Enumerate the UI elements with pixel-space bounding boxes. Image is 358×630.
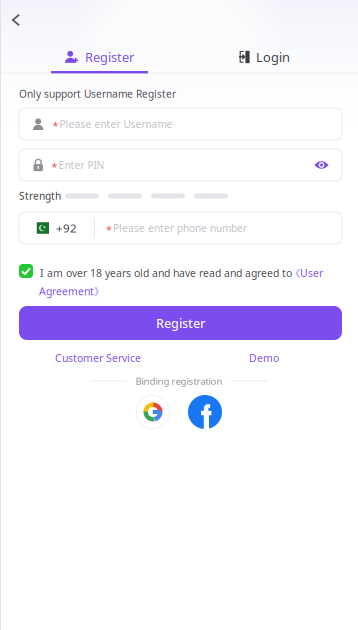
button[interactable]: Agree to terms <box>19 264 33 278</box>
staticText: Only support Username Register <box>19 87 176 101</box>
button[interactable]: Customer Service <box>18 349 178 367</box>
button[interactable]: Register <box>10 42 189 72</box>
staticText: Login <box>256 48 290 66</box>
staticText: Please enter phone number <box>113 221 247 235</box>
staticText: Enter PIN <box>58 158 104 172</box>
staticText: Demo <box>249 351 279 365</box>
button[interactable]: Show PIN <box>314 159 329 171</box>
button[interactable]: 《User <box>290 266 358 298</box>
staticText: Agreement》 <box>39 284 104 298</box>
staticText: Register <box>85 48 134 66</box>
staticText: 《User <box>290 266 323 280</box>
staticText: Please enter Username <box>59 117 172 131</box>
staticText: Register <box>156 314 205 332</box>
staticText: Binding registration <box>135 374 222 388</box>
staticText: * <box>51 159 57 174</box>
button[interactable]: Login <box>175 42 354 72</box>
staticText: * <box>52 118 58 133</box>
staticText: * <box>106 222 112 237</box>
button[interactable]: Back <box>1 5 31 35</box>
button[interactable]: Sign in with Facebook <box>188 395 222 429</box>
button[interactable]: Register <box>19 306 342 340</box>
button[interactable]: Demo <box>184 349 344 367</box>
staticText: Strength <box>19 189 61 203</box>
button[interactable]: Sign in with Google <box>136 395 170 429</box>
staticText: Customer Service <box>55 351 141 365</box>
staticText: I am over 18 years old and have read and… <box>40 266 292 280</box>
staticText: +92 <box>56 220 77 236</box>
